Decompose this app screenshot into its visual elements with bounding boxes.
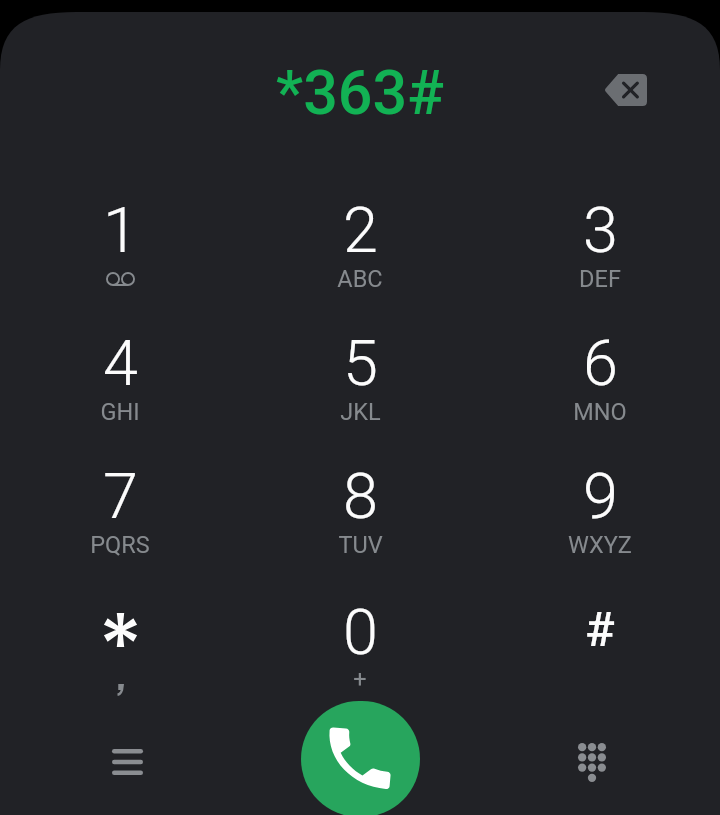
button[interactable]: More options — [102, 737, 153, 787]
button[interactable]: 1 — [0, 161, 240, 294]
staticText: PQRS — [90, 531, 150, 559]
button[interactable]: Call — [301, 701, 420, 815]
staticText: 2 — [343, 194, 378, 268]
button[interactable]: # — [480, 560, 720, 693]
staticText: *363# — [276, 57, 444, 128]
button[interactable]: 3 — [480, 161, 720, 294]
staticText: + — [353, 665, 367, 693]
staticText: # — [585, 601, 615, 658]
staticText: GHI — [100, 398, 140, 426]
button[interactable]: 2 — [240, 161, 480, 294]
button[interactable]: 5 — [240, 294, 480, 427]
staticText: MNO — [573, 398, 627, 426]
staticText: 4 — [103, 327, 138, 401]
button[interactable]: 6 — [480, 294, 720, 427]
staticText: 5 — [343, 327, 378, 401]
staticText: ABC — [337, 265, 383, 293]
staticText: 3 — [583, 194, 618, 268]
button[interactable]: 9 — [480, 427, 720, 560]
button[interactable] — [0, 560, 240, 693]
button[interactable]: 4 — [0, 294, 240, 427]
button[interactable]: Dialpad — [566, 737, 617, 787]
staticText: WXYZ — [568, 531, 632, 559]
staticText: 0 — [343, 596, 378, 670]
button[interactable]: 0 — [240, 560, 480, 693]
staticText: 7 — [103, 460, 138, 534]
button[interactable]: Backspace — [599, 64, 651, 116]
staticText: 6 — [583, 327, 618, 401]
staticText: 8 — [343, 460, 378, 534]
staticText: 9 — [583, 460, 618, 534]
button[interactable]: 8 — [240, 427, 480, 560]
button[interactable]: 7 — [0, 427, 240, 560]
staticText: TUV — [338, 531, 383, 559]
staticText: JKL — [340, 398, 381, 426]
staticText: 1 — [103, 194, 138, 268]
staticText: DEF — [579, 265, 621, 293]
